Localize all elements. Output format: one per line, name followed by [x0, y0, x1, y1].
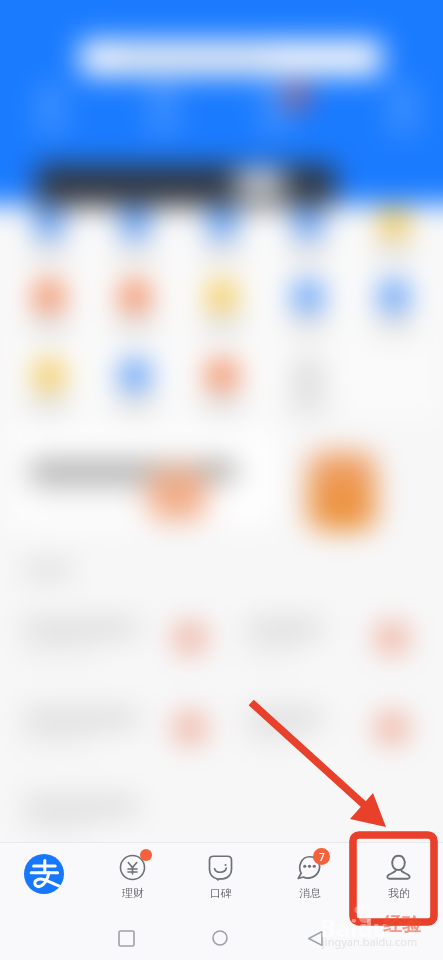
button[interactable]: 理财 [88, 843, 176, 916]
staticText: 我的 [388, 886, 410, 900]
staticText: 口碑 [210, 886, 232, 900]
button[interactable]: Recent apps [104, 916, 148, 960]
staticText: 经验 [383, 913, 421, 937]
button[interactable]: 支付宝 首页 [0, 843, 88, 916]
staticText: 消息 [299, 886, 321, 900]
button[interactable]: 我的 [354, 843, 443, 916]
staticText: Baidu [320, 911, 389, 944]
button[interactable]: Back [293, 916, 337, 960]
staticText: 理财 [122, 886, 144, 900]
staticText: jingyan.baidu.com [322, 934, 418, 949]
button[interactable]: 口碑 [176, 843, 265, 916]
button[interactable]: Home [198, 916, 242, 960]
button[interactable]: 7 [265, 843, 354, 916]
staticText: 7 [319, 850, 325, 864]
